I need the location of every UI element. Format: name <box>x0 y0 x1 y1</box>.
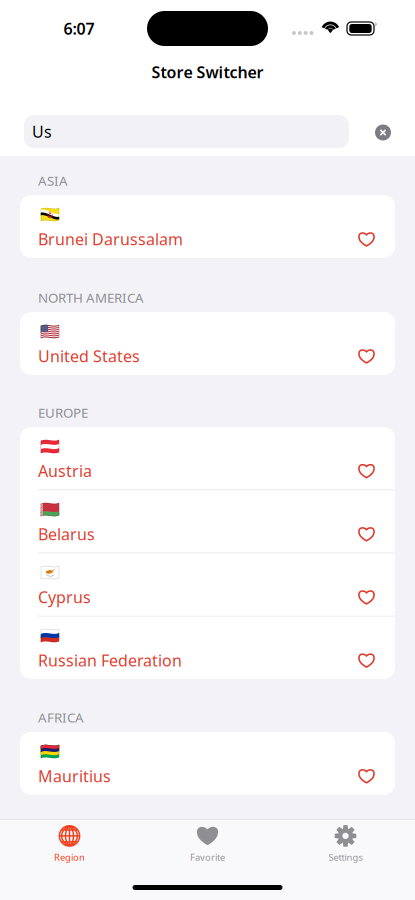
staticText: 🇦🇹 <box>40 437 60 455</box>
staticText: Austria <box>38 460 92 481</box>
staticText: AFRICA <box>38 708 84 726</box>
staticText: 🇧🇾 <box>40 500 60 518</box>
staticText: Store Switcher <box>151 61 263 83</box>
staticText: NORTH AMERICA <box>38 289 144 306</box>
staticText: Belarus <box>38 523 95 545</box>
button[interactable]: 🇧🇾 <box>20 490 395 552</box>
button[interactable]: Clear search <box>366 115 400 148</box>
staticText: ASIA <box>38 172 68 189</box>
staticText: Settings <box>328 851 362 863</box>
staticText: 🇷🇺 <box>40 626 60 645</box>
staticText: 🇨🇾 <box>40 563 60 582</box>
staticText: United States <box>38 345 140 367</box>
staticText: EUROPE <box>38 404 88 421</box>
staticText: 🇲🇺 <box>40 742 60 760</box>
staticText: 6:07 <box>63 18 94 39</box>
button[interactable]: Favorite <box>138 820 276 869</box>
staticText: 🇧🇳 <box>40 205 60 224</box>
staticText: Cyprus <box>38 586 91 608</box>
staticText: Us <box>32 121 52 142</box>
button[interactable]: 🇺🇸 <box>20 312 395 375</box>
staticText: Brunei Darussalam <box>38 228 183 250</box>
staticText: Mauritius <box>38 765 111 787</box>
button[interactable]: 🇧🇳 <box>20 195 395 258</box>
staticText: Region <box>54 851 85 863</box>
button[interactable]: Settings <box>276 820 414 869</box>
button[interactable]: 🇦🇹 <box>20 427 395 489</box>
button[interactable]: 🇨🇾 <box>20 553 395 616</box>
button[interactable]: 🇲🇺 <box>20 732 395 795</box>
staticText: Russian Federation <box>38 650 182 671</box>
staticText: 🇺🇸 <box>40 322 60 341</box>
button[interactable]: 🇷🇺 <box>20 616 395 679</box>
staticText: Favorite <box>190 851 225 863</box>
button[interactable]: Region <box>0 820 138 869</box>
